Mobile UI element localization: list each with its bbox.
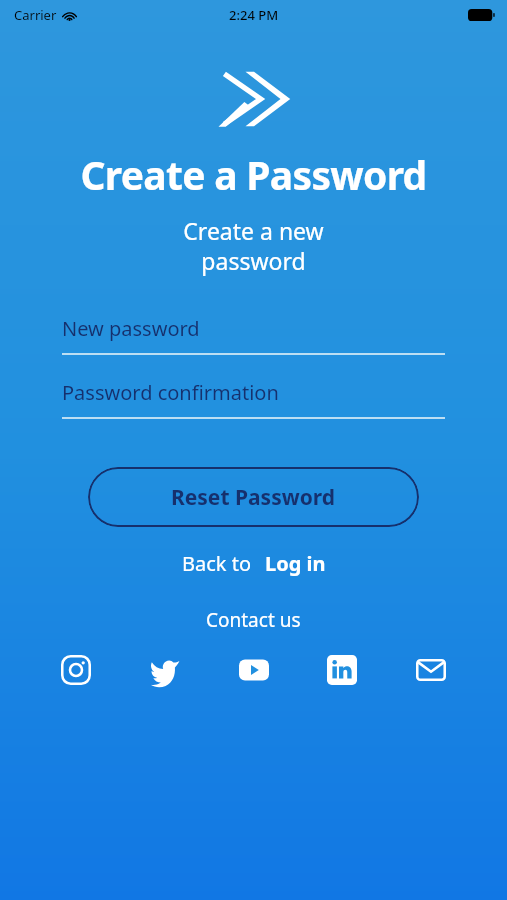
staticText: Log in: [265, 550, 326, 577]
button[interactable]: Reset Password: [88, 467, 419, 527]
staticText: Create a new password: [0, 215, 507, 277]
button[interactable]: Password confirmation: [62, 379, 445, 419]
button[interactable]: LinkedIn: [321, 649, 363, 691]
staticText: Create a Password: [0, 148, 507, 201]
staticText: Carrier: [14, 6, 57, 24]
button[interactable]: Twitter: [144, 649, 186, 691]
staticText: Reset Password: [171, 483, 336, 512]
staticText: New password: [62, 315, 200, 342]
button[interactable]: Contact us: [198, 605, 309, 635]
button[interactable]: New password: [62, 315, 445, 355]
staticText: Password confirmation: [62, 379, 279, 406]
button[interactable]: Email: [410, 649, 452, 691]
button[interactable]: Back to: [176, 548, 332, 579]
button[interactable]: Instagram: [55, 649, 97, 691]
button[interactable]: YouTube: [233, 649, 275, 691]
staticText: Back to: [182, 550, 252, 577]
staticText: 2:24 PM: [229, 6, 279, 24]
